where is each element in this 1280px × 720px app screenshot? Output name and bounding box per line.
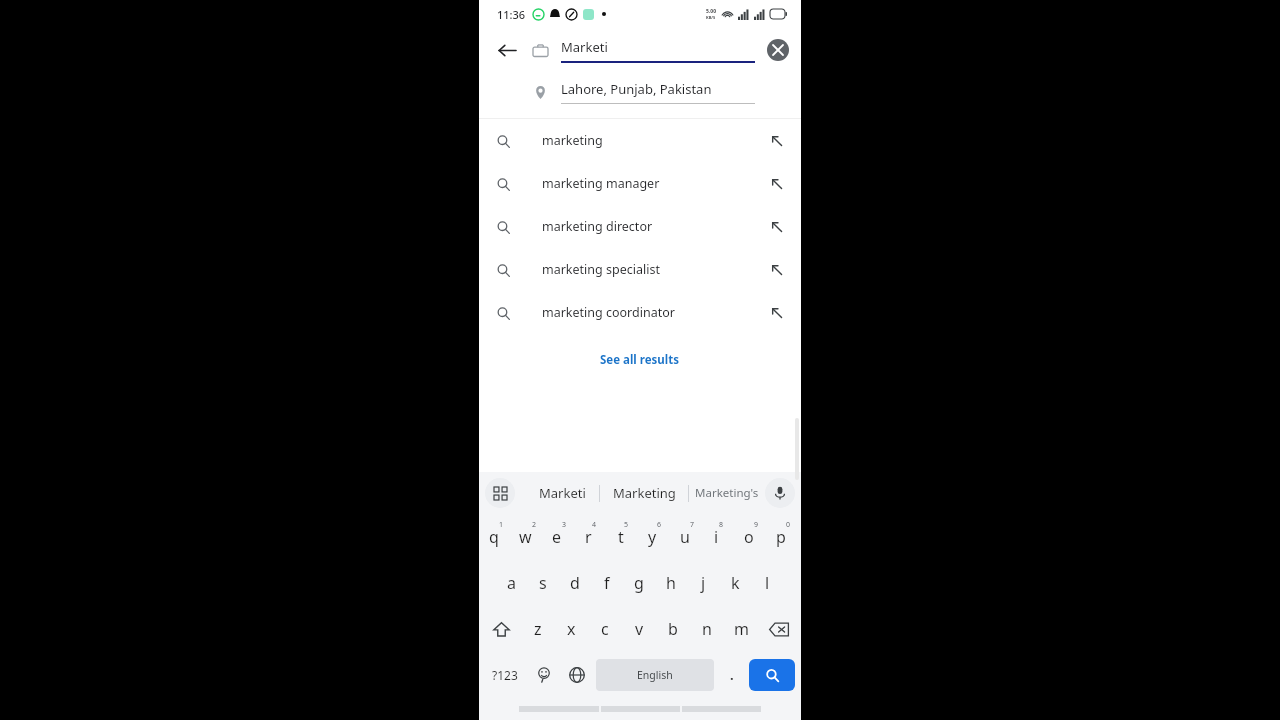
staticText: g (634, 572, 644, 594)
button[interactable]: o (735, 514, 767, 560)
button[interactable]: Search (749, 659, 795, 691)
staticText: e (552, 526, 562, 548)
staticText: d (570, 572, 580, 594)
staticText: k (731, 572, 740, 594)
button[interactable]: q (481, 514, 512, 560)
staticText: o (744, 526, 754, 548)
button[interactable]: m (724, 606, 758, 652)
staticText: 2 (532, 520, 537, 530)
staticText: English (637, 668, 673, 682)
staticText: h (666, 572, 676, 594)
button[interactable]: c (588, 606, 622, 652)
staticText: 6 (657, 520, 662, 530)
button[interactable]: Clear (767, 39, 789, 61)
staticText: . (730, 666, 734, 684)
button[interactable]: Change language (560, 652, 593, 698)
staticText: Marketi (561, 38, 608, 56)
staticText: r (585, 526, 592, 548)
staticText: 11:36 (497, 7, 526, 22)
staticText: u (680, 526, 690, 548)
staticText: KB/S (706, 15, 716, 20)
button[interactable]: f (591, 560, 623, 606)
staticText: 7 (690, 520, 695, 530)
button[interactable]: y (639, 514, 671, 560)
staticText: x (567, 618, 576, 640)
button[interactable]: Back (493, 36, 521, 64)
button[interactable]: marketing director (479, 205, 801, 248)
button[interactable]: marketing (479, 119, 801, 162)
button[interactable]: l (751, 560, 783, 606)
button[interactable]: k (719, 560, 751, 606)
staticText: v (635, 618, 644, 640)
staticText: Lahore, Punjab, Pakistan (561, 80, 712, 98)
staticText: ?123 (492, 667, 518, 683)
staticText: s (539, 572, 547, 594)
button[interactable]: Marketi (525, 484, 599, 502)
button[interactable]: Voice input (765, 478, 795, 508)
button[interactable]: h (655, 560, 687, 606)
staticText: i (714, 526, 719, 548)
staticText: j (701, 572, 706, 594)
button[interactable]: x (554, 606, 588, 652)
staticText: q (489, 526, 499, 548)
button[interactable]: t (607, 514, 639, 560)
button[interactable]: Insert marketing specialist (767, 260, 787, 280)
button[interactable]: i (703, 514, 735, 560)
button[interactable]: w (512, 514, 543, 560)
button[interactable]: u (671, 514, 703, 560)
staticText: w (519, 526, 532, 548)
staticText: See all results (600, 352, 680, 368)
staticText: 3 (562, 520, 567, 530)
button[interactable]: d (559, 560, 591, 606)
button[interactable]: Insert marketing director (767, 217, 787, 237)
button[interactable]: Toolbar (485, 478, 515, 508)
button[interactable]: Insert marketing coordinator (767, 303, 787, 323)
button[interactable]: g (623, 560, 655, 606)
staticText: t (618, 526, 624, 548)
button[interactable]: Insert marketing (767, 131, 787, 151)
button[interactable]: Emoji (527, 652, 560, 698)
button[interactable]: marketing manager (479, 162, 801, 205)
button[interactable]: v (622, 606, 656, 652)
staticText: 0 (786, 520, 791, 530)
button[interactable]: p (767, 514, 799, 560)
button[interactable]: s (527, 560, 559, 606)
button[interactable]: r (575, 514, 607, 560)
button[interactable]: Marketing's (689, 485, 765, 501)
button[interactable]: n (690, 606, 724, 652)
staticText: marketing specialist (542, 261, 660, 278)
button[interactable]: English (596, 659, 714, 691)
staticText: marketing coordinator (542, 304, 675, 321)
button[interactable]: marketing coordinator (479, 291, 801, 334)
staticText: marketing manager (542, 175, 660, 192)
staticText: 9 (754, 520, 759, 530)
staticText: f (604, 572, 610, 594)
staticText: marketing (542, 132, 603, 149)
button[interactable]: j (687, 560, 719, 606)
staticText: Marketi (539, 484, 586, 502)
staticText: 1 (499, 520, 504, 530)
staticText: m (734, 618, 749, 640)
staticText: 5 (624, 520, 629, 530)
button[interactable]: Insert marketing manager (767, 174, 787, 194)
staticText: a (507, 572, 516, 594)
button[interactable]: ?123 (482, 652, 527, 698)
button[interactable]: z (521, 606, 554, 652)
button[interactable]: . (717, 652, 746, 698)
button[interactable]: b (656, 606, 690, 652)
staticText: 4 (592, 520, 597, 530)
staticText: l (765, 572, 770, 594)
staticText: y (648, 526, 657, 548)
button[interactable]: Marketing (600, 484, 688, 502)
button[interactable]: Backspace (758, 606, 799, 652)
staticText: b (668, 618, 678, 640)
staticText: 8 (719, 520, 724, 530)
button[interactable]: marketing specialist (479, 248, 801, 291)
staticText: n (702, 618, 712, 640)
button[interactable]: a (496, 560, 527, 606)
staticText: 5.00 (706, 8, 716, 15)
button[interactable]: See all results (584, 346, 696, 374)
button[interactable]: e (543, 514, 575, 560)
staticText: p (776, 526, 786, 548)
button[interactable]: Shift (481, 606, 521, 652)
